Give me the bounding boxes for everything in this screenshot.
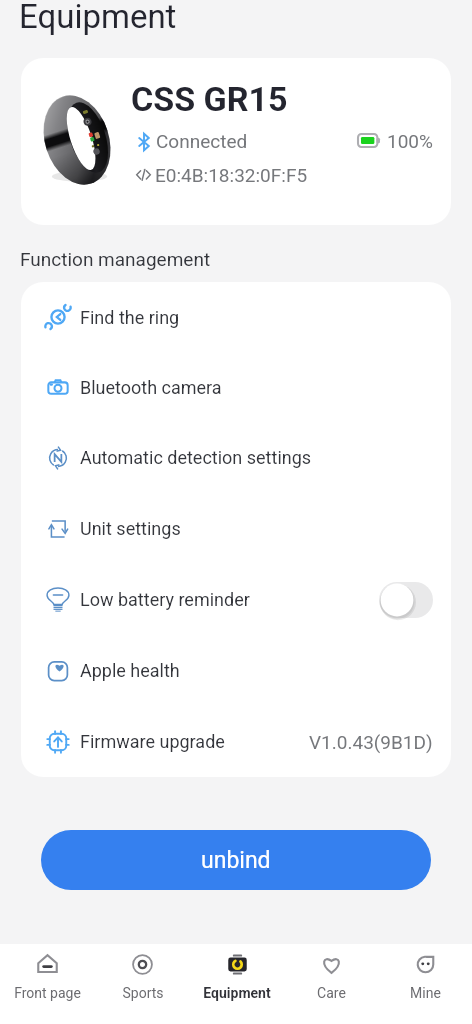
button[interactable]: CSS GR15	[21, 58, 451, 225]
staticText: Bluetooth camera	[80, 377, 222, 398]
button[interactable]: Equipment	[190, 944, 284, 1024]
staticText: Apple health	[80, 660, 180, 681]
staticText: Function management	[20, 248, 211, 270]
staticText: Sports	[122, 985, 164, 1001]
button[interactable]: Low battery reminder toggle	[379, 582, 433, 618]
staticText: 100%	[387, 130, 433, 152]
staticText: E0:4B:18:32:0F:F5	[155, 164, 308, 186]
staticText: CSS GR15	[131, 79, 288, 119]
staticText: Firmware upgrade	[80, 731, 225, 752]
staticText: V1.0.43(9B1D)	[309, 731, 433, 753]
button[interactable]: Bluetooth camera	[21, 352, 451, 422]
staticText: Automatic detection settings	[80, 447, 312, 468]
button[interactable]: Sports	[95, 944, 190, 1024]
staticText: Unit settings	[80, 518, 181, 539]
button[interactable]: Unit settings	[21, 493, 451, 564]
staticText: Equipment	[203, 985, 271, 1001]
button[interactable]: Apple health	[21, 635, 451, 706]
staticText: Mine	[410, 985, 441, 1001]
staticText: Front page	[14, 985, 81, 1001]
button[interactable]: unbind	[41, 830, 431, 890]
button[interactable]: Front page	[0, 944, 95, 1024]
staticText: Care	[317, 985, 346, 1001]
button[interactable]: Automatic detection settings	[21, 422, 451, 493]
staticText: unbind	[201, 847, 271, 874]
staticText: Connected	[156, 130, 248, 152]
button[interactable]: Find the ring	[21, 282, 451, 352]
button[interactable]: Firmware upgrade	[21, 706, 451, 777]
staticText: Find the ring	[80, 307, 180, 328]
staticText: Equipment	[19, 0, 177, 36]
staticText: Low battery reminder	[80, 589, 250, 610]
button[interactable]: Care	[284, 944, 378, 1024]
button[interactable]: Low battery reminder	[21, 564, 451, 635]
button[interactable]: Mine	[378, 944, 472, 1024]
